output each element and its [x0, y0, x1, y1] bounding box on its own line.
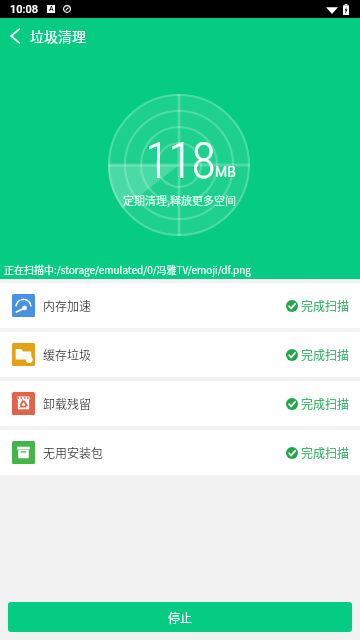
staticText: MB: [215, 164, 236, 180]
staticText: 10:08: [10, 3, 38, 16]
button[interactable]: Back: [0, 21, 30, 51]
staticText: 停止: [168, 609, 193, 626]
staticText: 完成扫描: [301, 346, 350, 363]
staticText: 缓存垃圾: [43, 346, 92, 363]
staticText: 卸载残留: [43, 395, 92, 412]
button[interactable]: 缓存垃圾: [0, 332, 360, 377]
staticText: 完成扫描: [301, 297, 350, 314]
staticText: 内存加速: [43, 297, 92, 314]
button[interactable]: 停止: [8, 602, 352, 632]
staticText: 完成扫描: [301, 395, 350, 412]
button[interactable]: 内存加速: [0, 283, 360, 328]
button[interactable]: 卸载残留: [0, 381, 360, 426]
staticText: 定期清理,释放更多空间: [123, 192, 237, 208]
staticText: 垃圾清理: [30, 26, 86, 46]
button[interactable]: 无用安装包: [0, 430, 360, 475]
staticText: 完成扫描: [301, 444, 350, 461]
staticText: 无用安装包: [43, 444, 104, 461]
staticText: 正在扫描中:/storage/emulated/0/冯雅TV/emoji/df.…: [4, 262, 251, 276]
staticText: 118: [145, 132, 215, 191]
staticText: A: [49, 5, 54, 13]
